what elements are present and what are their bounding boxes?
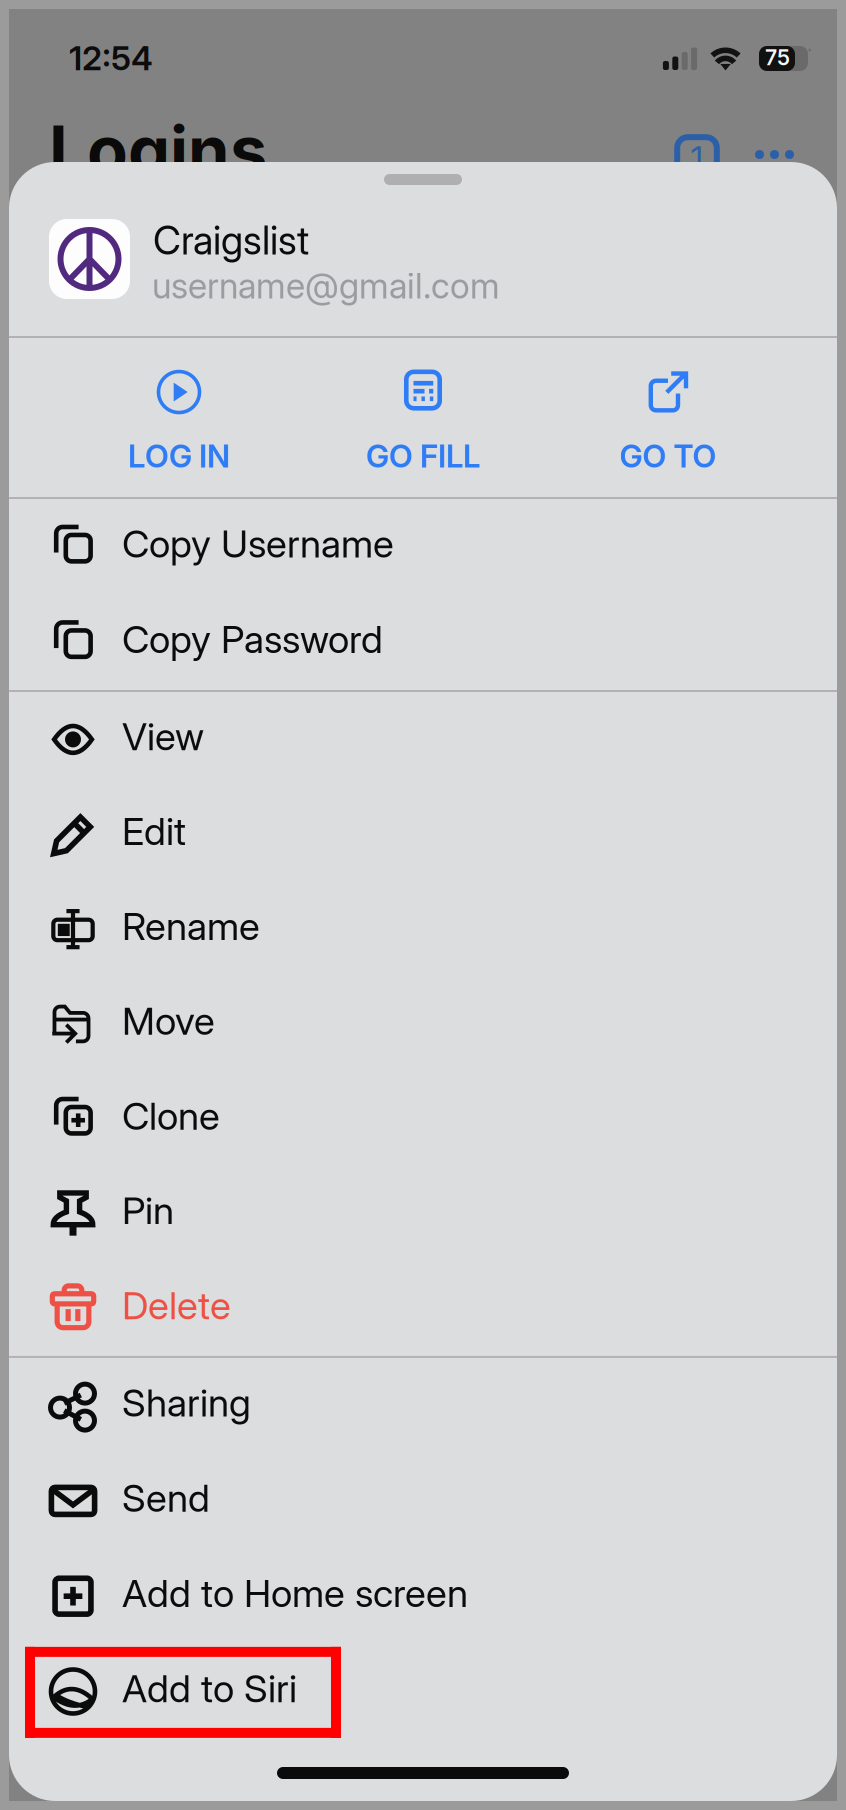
staticText: View <box>122 713 204 759</box>
staticText: Send <box>122 1475 210 1521</box>
staticText: Pin <box>122 1188 174 1234</box>
staticText: Clone <box>122 1093 220 1139</box>
staticText: 1 <box>690 138 703 178</box>
staticText: Move <box>122 998 215 1044</box>
staticText: 12:54 <box>69 38 153 78</box>
button[interactable]: View <box>9 692 837 787</box>
staticText: Craigslist <box>153 217 309 264</box>
staticText: Add to Siri <box>122 1665 297 1711</box>
button[interactable]: Rename <box>9 882 837 976</box>
button[interactable]: GO FILL <box>308 342 538 501</box>
button[interactable]: Pin <box>9 1166 837 1261</box>
staticText: Copy Password <box>122 616 383 662</box>
staticText: Add to Home screen <box>122 1570 468 1616</box>
button[interactable]: Copy Password <box>9 594 837 690</box>
staticText: Sharing <box>122 1380 251 1426</box>
button[interactable]: Clone <box>9 1071 837 1166</box>
staticText: username@gmail.com <box>152 265 500 307</box>
button[interactable]: Edit <box>9 787 837 882</box>
staticText: LOG IN <box>128 437 230 475</box>
button[interactable]: GO TO <box>553 342 783 501</box>
staticText: 75 <box>765 45 790 70</box>
button[interactable]: Move <box>9 977 837 1071</box>
button[interactable]: LOG IN <box>64 342 294 501</box>
button[interactable]: Delete <box>9 1261 837 1356</box>
staticText: Edit <box>122 808 186 854</box>
staticText: Copy Username <box>122 521 394 567</box>
button[interactable]: Copy Username <box>9 499 837 594</box>
button[interactable]: Send <box>9 1453 837 1548</box>
button[interactable]: Add to Home screen <box>9 1548 837 1644</box>
button[interactable]: Sharing <box>9 1358 837 1453</box>
staticText: Logins <box>49 110 267 191</box>
staticText: Rename <box>122 903 260 949</box>
staticText: GO FILL <box>366 437 480 475</box>
staticText: Delete <box>122 1282 231 1328</box>
staticText: GO TO <box>619 437 716 475</box>
button[interactable]: Add to Siri <box>9 1644 837 1739</box>
